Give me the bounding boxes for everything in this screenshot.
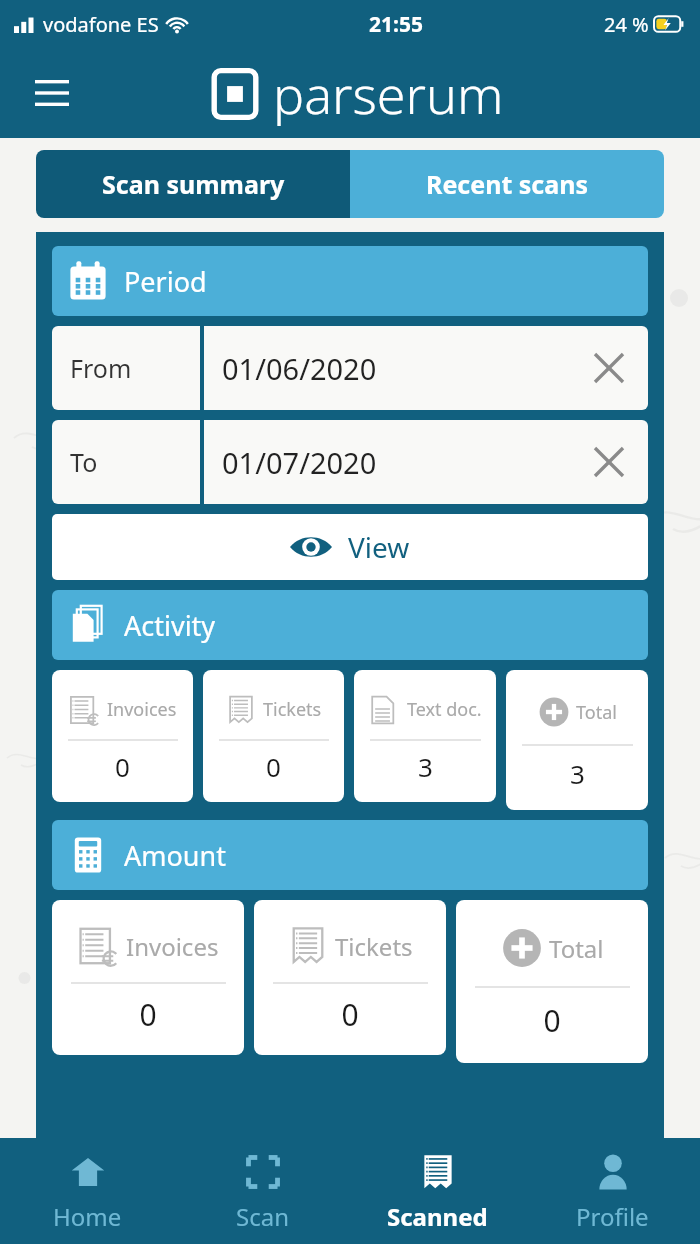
- staticText: 3: [570, 756, 585, 791]
- staticText: 3: [418, 749, 433, 784]
- button[interactable]: Clear From date: [588, 347, 630, 389]
- button[interactable]: Profile: [525, 1138, 700, 1244]
- button[interactable]: To: [52, 420, 648, 504]
- button[interactable]: Text doc.: [354, 670, 496, 802]
- staticText: Invoices: [107, 697, 177, 722]
- staticText: Home: [53, 1200, 122, 1233]
- staticText: 0: [139, 994, 157, 1035]
- staticText: Period: [124, 263, 207, 300]
- staticText: 0: [341, 994, 359, 1035]
- staticText: Activity: [124, 607, 216, 644]
- staticText: To: [70, 445, 98, 479]
- staticText: Recent scans: [426, 167, 588, 201]
- staticText: 21:55: [369, 10, 423, 39]
- button[interactable]: Amount: [52, 820, 648, 890]
- staticText: 01/06/2020: [222, 349, 377, 388]
- button[interactable]: Invoices: [52, 900, 244, 1055]
- button[interactable]: Activity: [52, 590, 648, 660]
- staticText: Tickets: [335, 930, 413, 963]
- staticText: Total: [549, 932, 604, 965]
- staticText: Scanned: [387, 1200, 488, 1233]
- staticText: Scan summary: [102, 167, 285, 201]
- staticText: 0: [266, 749, 281, 784]
- staticText: Text doc.: [407, 697, 482, 722]
- button[interactable]: Scan summary: [36, 150, 350, 218]
- button[interactable]: Invoices: [52, 670, 193, 802]
- staticText: 0: [543, 1000, 561, 1041]
- staticText: Total: [576, 700, 617, 725]
- button[interactable]: Total: [506, 670, 648, 810]
- staticText: parserum: [273, 58, 504, 129]
- staticText: Invoices: [126, 930, 219, 963]
- staticText: Tickets: [263, 697, 322, 722]
- button[interactable]: View: [52, 514, 648, 580]
- button[interactable]: Home: [0, 1138, 175, 1244]
- button[interactable]: Menu: [24, 65, 80, 121]
- staticText: 0: [115, 749, 130, 784]
- staticText: Amount: [124, 837, 226, 874]
- button[interactable]: Recent scans: [350, 150, 664, 218]
- button[interactable]: Total: [456, 900, 648, 1063]
- staticText: Scan: [236, 1200, 289, 1233]
- staticText: From: [70, 351, 132, 385]
- staticText: Profile: [576, 1200, 649, 1233]
- staticText: View: [348, 528, 410, 566]
- button[interactable]: Scan: [175, 1138, 350, 1244]
- button[interactable]: Tickets: [203, 670, 344, 802]
- staticText: 24 %: [604, 11, 649, 38]
- button[interactable]: Period: [52, 246, 648, 316]
- button[interactable]: From: [52, 326, 648, 410]
- button[interactable]: Tickets: [254, 900, 446, 1055]
- button[interactable]: Scanned: [350, 1138, 525, 1244]
- staticText: 01/07/2020: [222, 443, 377, 482]
- button[interactable]: Clear To date: [588, 441, 630, 483]
- staticText: vodafone ES: [43, 11, 159, 38]
